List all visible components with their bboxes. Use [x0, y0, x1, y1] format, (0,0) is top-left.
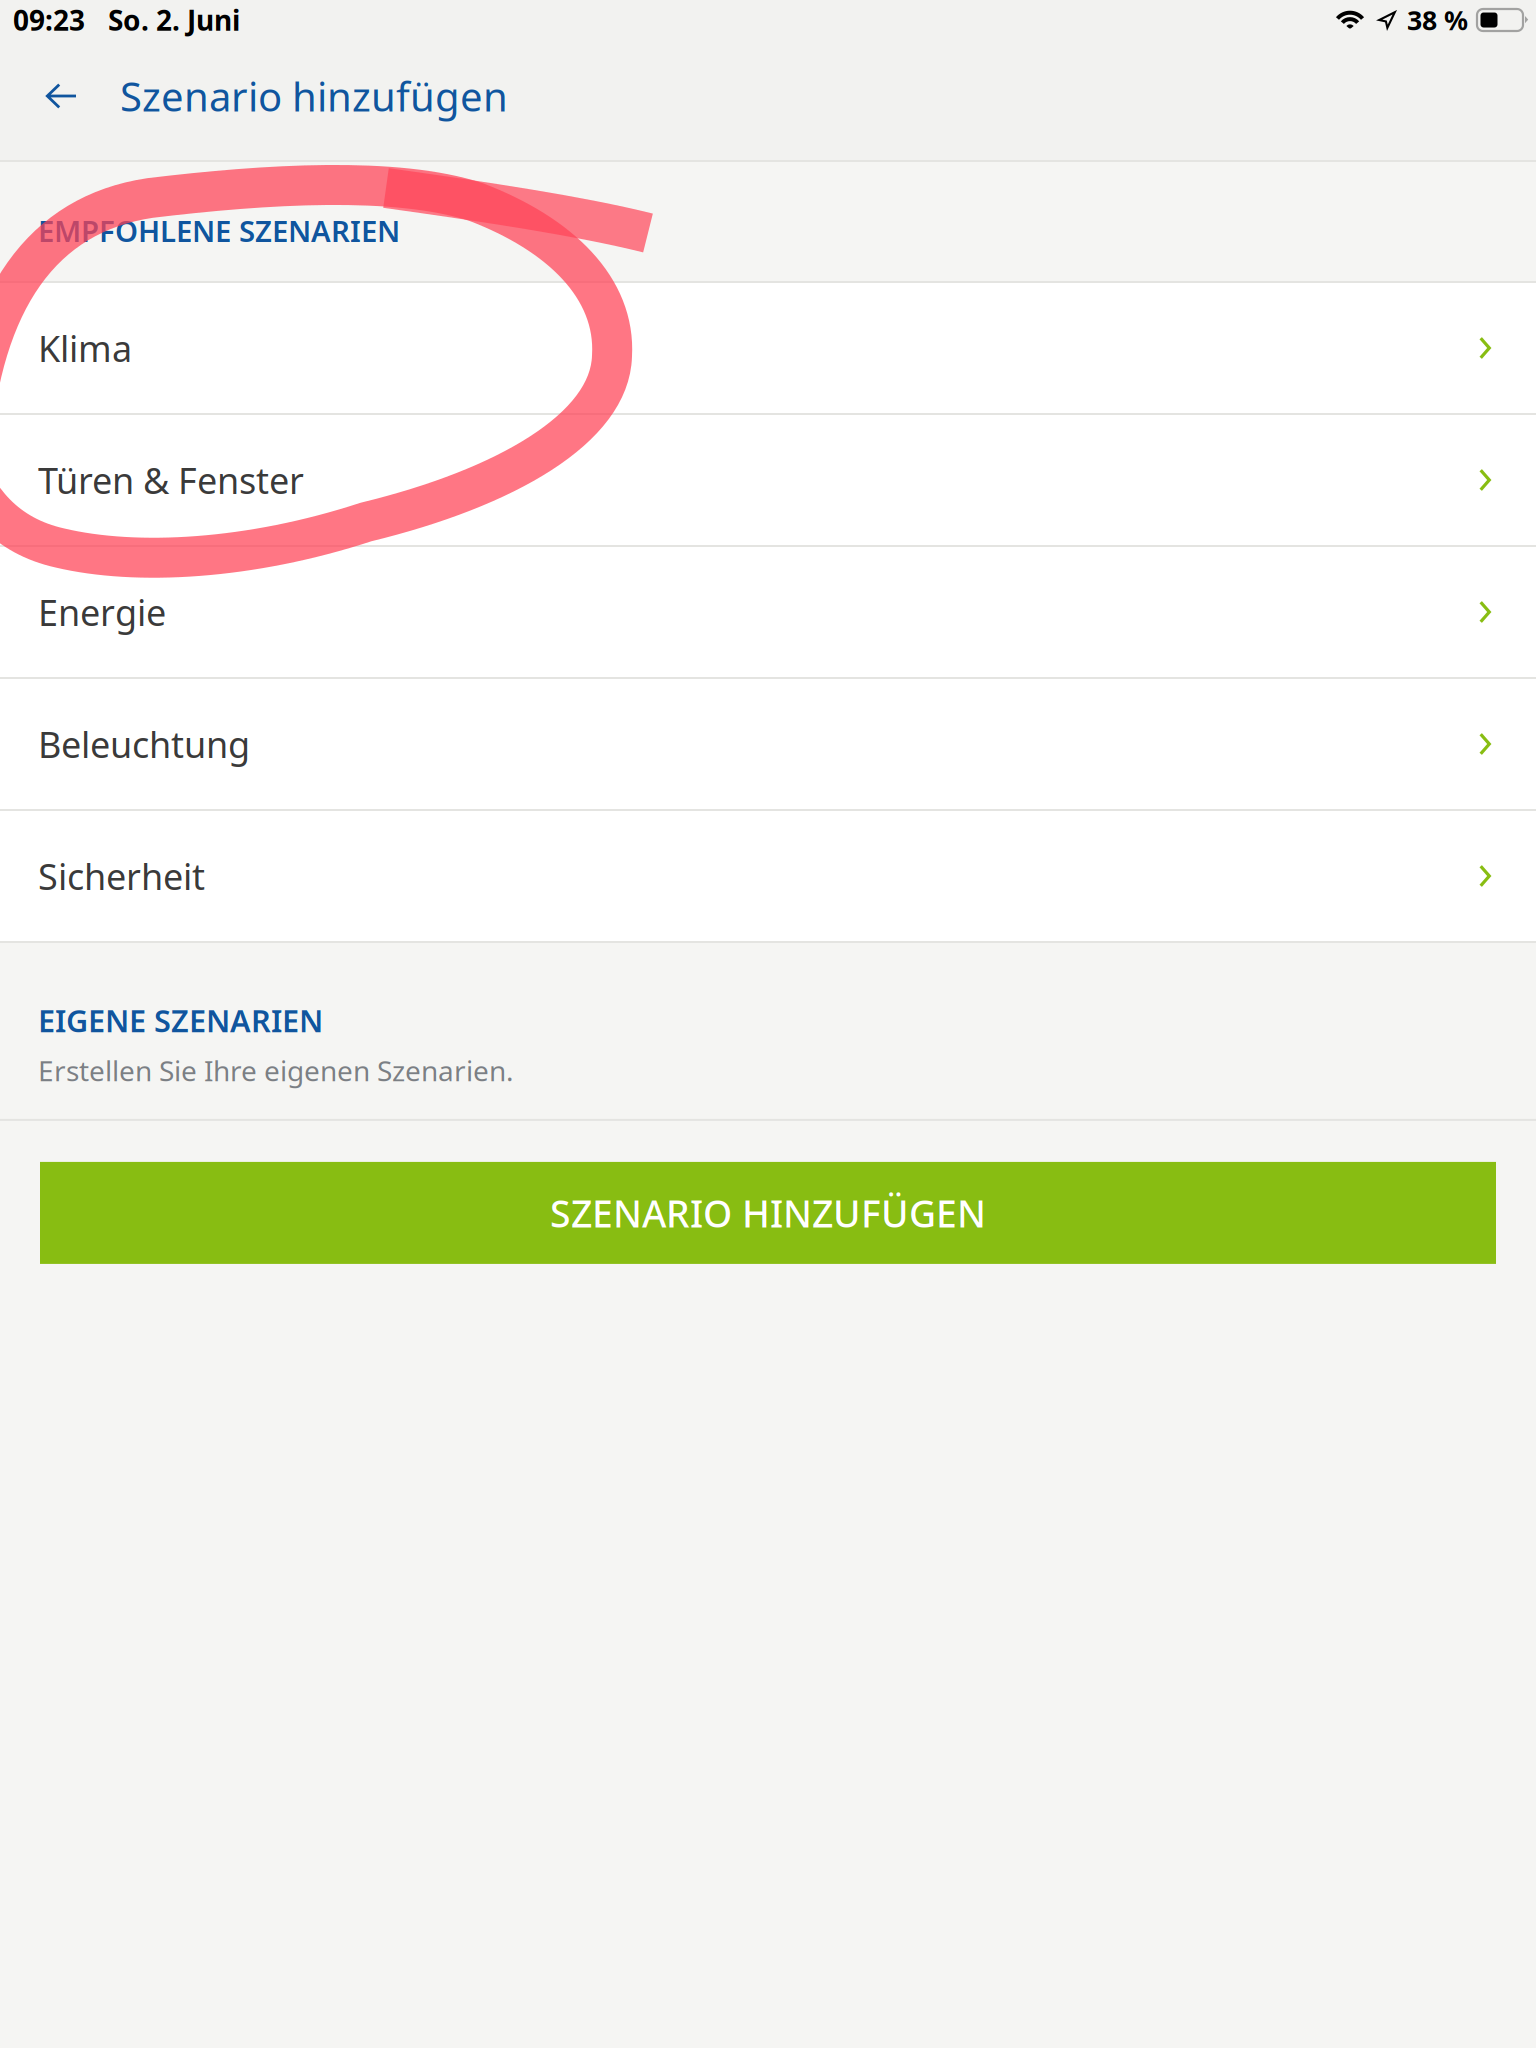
staticText: Erstellen Sie Ihre eigenen Szenarien.: [38, 1052, 514, 1089]
button[interactable]: Türen & Fenster: [0, 415, 1536, 545]
button[interactable]: Beleuchtung: [0, 679, 1536, 809]
staticText: Klima: [38, 324, 132, 372]
staticText: 38 %: [1407, 2, 1468, 38]
staticText: SZENARIO HINZUFÜGEN: [550, 1188, 986, 1238]
staticText: Energie: [38, 588, 166, 636]
staticText: Türen & Fenster: [38, 456, 304, 504]
button[interactable]: Klima: [0, 283, 1536, 413]
button[interactable]: Zurück (Back): [23, 50, 99, 142]
staticText: 09:23: [13, 1, 85, 39]
button[interactable]: Energie: [0, 547, 1536, 677]
staticText: Szenario hinzufügen: [120, 69, 508, 122]
staticText: Beleuchtung: [38, 720, 250, 768]
staticText: Sicherheit: [38, 852, 205, 900]
staticText: So. 2. Juni: [108, 1, 240, 39]
staticText: EMPFOHLENE SZENARIEN: [38, 211, 400, 250]
staticText: EIGENE SZENARIEN: [38, 1000, 323, 1041]
button[interactable]: SZENARIO HINZUFÜGEN: [40, 1162, 1496, 1264]
button[interactable]: Sicherheit: [0, 811, 1536, 941]
